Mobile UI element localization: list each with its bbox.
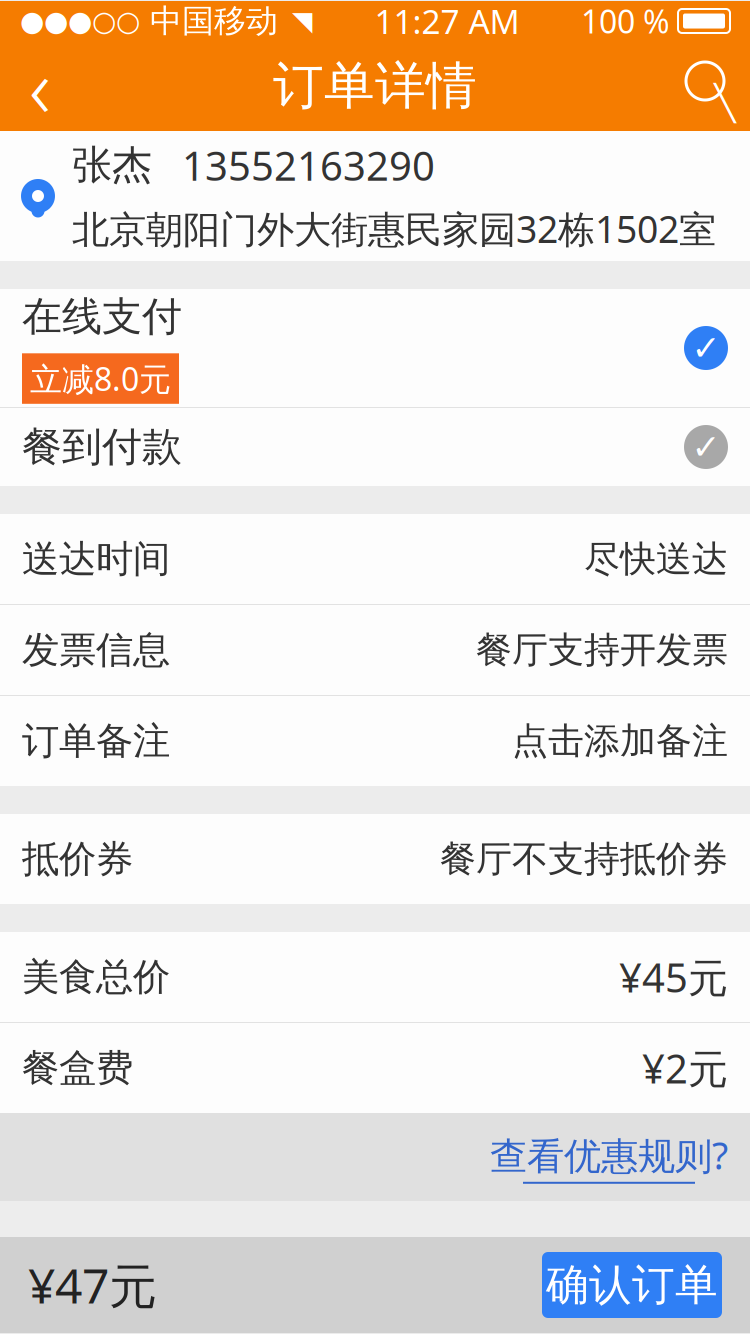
staticText: 立减8.0元 bbox=[30, 357, 171, 400]
button[interactable]: 确认订单 bbox=[542, 1252, 722, 1318]
staticText: ¥47元 bbox=[28, 1253, 157, 1317]
staticText: 确认订单 bbox=[546, 1259, 718, 1311]
staticText: 美食总价 bbox=[22, 954, 170, 1000]
button[interactable]: 在线支付 bbox=[0, 289, 750, 407]
button[interactable]: 张杰 bbox=[0, 131, 750, 261]
staticText: 餐厅不支持抵价券 bbox=[440, 837, 728, 881]
staticText: 100 % bbox=[581, 0, 670, 42]
staticText: 11:27 AM bbox=[374, 0, 519, 43]
staticText: 餐盒费 bbox=[22, 1045, 133, 1091]
staticText: 点击添加备注 bbox=[512, 719, 728, 763]
staticText: 餐厅支持开发票 bbox=[476, 628, 728, 672]
staticText: ╲ bbox=[714, 83, 735, 123]
button[interactable]: 查看优惠规则? bbox=[0, 1113, 750, 1201]
button[interactable]: 搜索 bbox=[670, 43, 750, 129]
staticText: ✓ bbox=[691, 427, 720, 467]
button[interactable]: 抵价券 bbox=[0, 814, 750, 904]
staticText: 查看优惠规则? bbox=[490, 1130, 728, 1180]
staticText: 餐到付款 bbox=[22, 422, 182, 471]
staticText: ✓ bbox=[691, 328, 720, 368]
staticText: ◥ bbox=[292, 6, 313, 36]
staticText: ¥45元 bbox=[619, 950, 728, 1003]
staticText: 13552163290 bbox=[182, 139, 435, 192]
staticText: 北京朝阳门外大街惠民家园32栋1502室 bbox=[72, 204, 716, 253]
staticText: 在线支付 bbox=[22, 292, 182, 341]
staticText: 订单备注 bbox=[22, 718, 170, 764]
button[interactable]: 餐到付款 bbox=[0, 408, 750, 486]
staticText: 尽快送达 bbox=[584, 537, 728, 581]
button[interactable]: 美食总价 bbox=[0, 932, 750, 1022]
staticText: 中国移动 bbox=[150, 1, 278, 41]
staticText: ‹ bbox=[29, 31, 51, 141]
button[interactable]: 返回 bbox=[0, 43, 80, 129]
staticText: ¥2元 bbox=[642, 1041, 728, 1094]
staticText: 订单详情 bbox=[273, 55, 477, 117]
staticText: ●●●○○ bbox=[20, 5, 140, 37]
staticText: 送达时间 bbox=[22, 536, 170, 582]
button[interactable]: 送达时间 bbox=[0, 514, 750, 604]
button[interactable]: 餐盒费 bbox=[0, 1023, 750, 1113]
button[interactable]: 订单备注 bbox=[0, 696, 750, 786]
staticText: 抵价券 bbox=[22, 836, 133, 882]
staticText: 张杰 bbox=[72, 141, 152, 190]
staticText: 发票信息 bbox=[22, 627, 170, 673]
button[interactable]: 发票信息 bbox=[0, 605, 750, 695]
